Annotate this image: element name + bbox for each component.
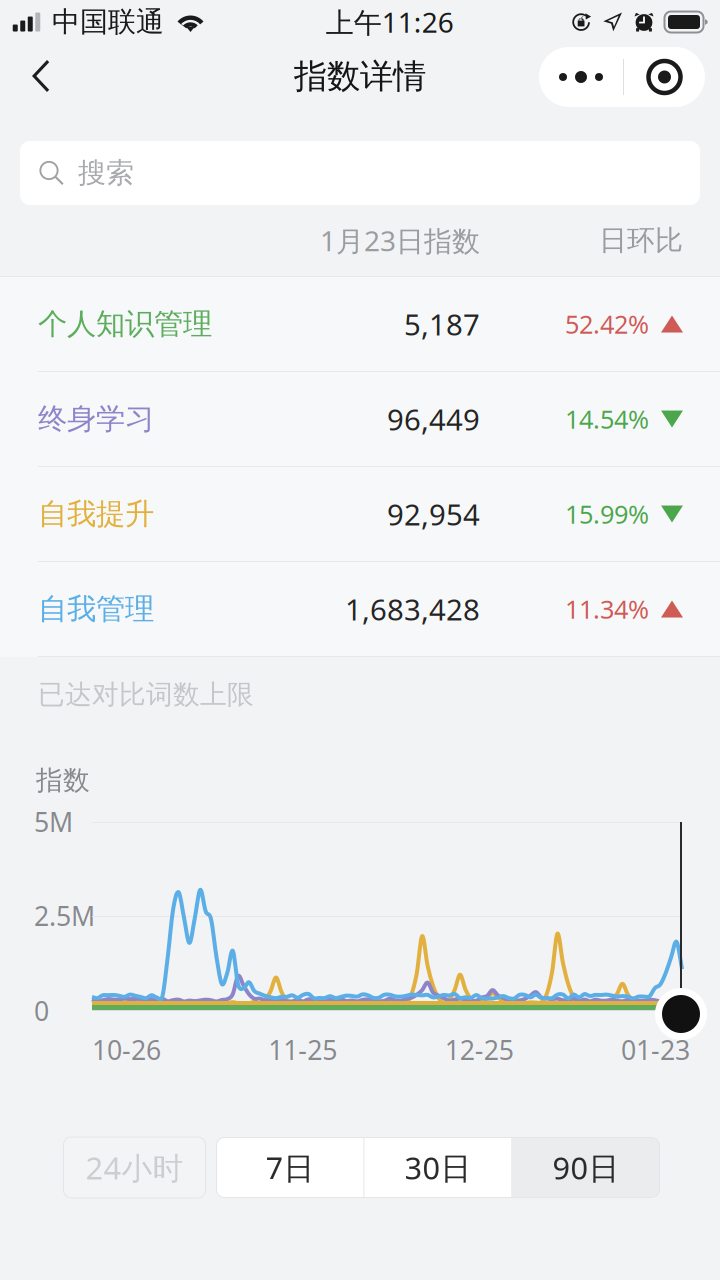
staticText: 0 xyxy=(34,993,49,1028)
button[interactable]: More xyxy=(539,47,623,107)
button[interactable]: 7日 xyxy=(216,1137,363,1197)
button[interactable]: 终身学习 xyxy=(0,372,720,466)
staticText: 搜索 xyxy=(78,156,134,190)
staticText: 15.99% xyxy=(565,497,649,531)
staticText: 12-25 xyxy=(445,1032,514,1067)
staticText: 01-23 xyxy=(621,1032,690,1067)
staticText: 5,187 xyxy=(404,304,480,343)
button[interactable]: Back xyxy=(10,45,72,107)
staticText: 1月23日指数 xyxy=(320,222,480,259)
staticText: 1,683,428 xyxy=(345,589,480,628)
staticText: 11-25 xyxy=(268,1032,337,1067)
staticText: 7日 xyxy=(265,1147,314,1188)
staticText: 自我提升 xyxy=(38,496,154,532)
button[interactable]: Close mini program xyxy=(624,47,705,107)
button[interactable]: 个人知识管理 xyxy=(0,277,720,371)
button[interactable]: 90日 xyxy=(512,1137,659,1197)
staticText: 上午11:26 xyxy=(326,3,454,41)
staticText: 中国联通 xyxy=(52,5,164,39)
staticText: 10-26 xyxy=(92,1032,161,1067)
button[interactable]: 30日 xyxy=(364,1137,511,1197)
button[interactable]: 自我管理 xyxy=(0,562,720,656)
staticText: 已达对比词数上限 xyxy=(38,678,254,711)
button[interactable]: 搜索 xyxy=(20,141,700,205)
staticText: 终身学习 xyxy=(38,401,154,437)
staticText: 11.34% xyxy=(565,592,649,626)
staticText: 24小时 xyxy=(85,1147,183,1188)
staticText: 日环比 xyxy=(599,223,683,258)
staticText: 指数详情 xyxy=(294,56,426,97)
staticText: 2.5M xyxy=(34,898,95,933)
button[interactable]: 自我提升 xyxy=(0,467,720,561)
staticText: 14.54% xyxy=(565,402,649,436)
button[interactable]: 24小时 xyxy=(63,1137,205,1198)
staticText: 自我管理 xyxy=(38,591,154,627)
staticText: 90日 xyxy=(552,1147,619,1188)
staticText: 指数 xyxy=(36,764,90,797)
staticText: 52.42% xyxy=(565,307,649,341)
staticText: 96,449 xyxy=(387,399,480,438)
staticText: 92,954 xyxy=(387,494,480,533)
staticText: 个人知识管理 xyxy=(38,306,212,342)
staticText: 5M xyxy=(34,804,73,839)
staticText: 30日 xyxy=(404,1147,471,1188)
